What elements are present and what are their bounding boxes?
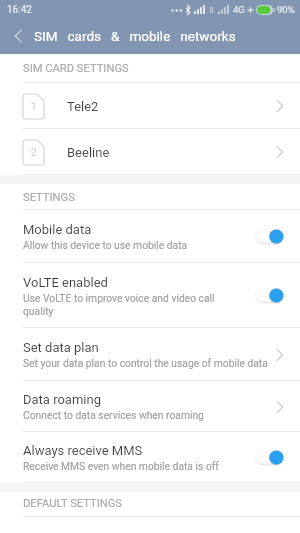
staticText: SETTINGS: [23, 191, 75, 204]
staticText: Beeline: [67, 145, 110, 160]
button[interactable]: 1: [0, 83, 300, 129]
staticText: Always receive MMS: [23, 443, 143, 458]
button[interactable]: Toggle on: [255, 450, 284, 465]
other: Open: [275, 400, 284, 414]
staticText: Allow this device to use mobile data: [23, 239, 188, 251]
staticText: VoLTE enabled: [23, 275, 108, 290]
staticText: Set data plan: [23, 340, 99, 355]
staticText: 1: [31, 101, 37, 113]
button[interactable]: Toggle on: [255, 229, 284, 244]
button[interactable]: VoLTE enabled: [0, 263, 300, 328]
button[interactable]: Data roaming: [0, 381, 300, 432]
other: Open: [275, 145, 284, 159]
staticText: 2: [31, 147, 37, 159]
staticText: SIM CARD SETTINGS: [23, 62, 129, 75]
staticText: quality: [23, 305, 54, 317]
button[interactable]: Set data plan: [0, 328, 300, 381]
staticText: Data roaming: [23, 392, 101, 407]
staticText: Receive MMS even when mobile data is off: [23, 460, 219, 472]
staticText: DEFAULT SETTINGS: [23, 497, 123, 510]
button[interactable]: Navigate up: [0, 19, 34, 54]
staticText: Use VoLTE to improve voice and video cal…: [23, 292, 215, 304]
staticText: 16:42: [7, 4, 32, 16]
staticText: Connect to data services when roaming: [23, 409, 204, 421]
staticText: 4G: [233, 4, 245, 15]
staticText: Mobile data: [23, 222, 92, 237]
staticText: Set your data plan to control the usage …: [23, 357, 268, 369]
staticText: Tele2: [67, 99, 99, 114]
button[interactable]: 2: [0, 129, 300, 175]
other: Open: [275, 99, 284, 113]
other: Open: [275, 348, 284, 362]
staticText: SIM cards & mobile networks: [34, 28, 236, 44]
staticText: 90%: [277, 4, 295, 15]
button[interactable]: Toggle on: [255, 288, 284, 303]
button[interactable]: Mobile data: [0, 210, 300, 263]
button[interactable]: Always receive MMS: [0, 432, 300, 483]
